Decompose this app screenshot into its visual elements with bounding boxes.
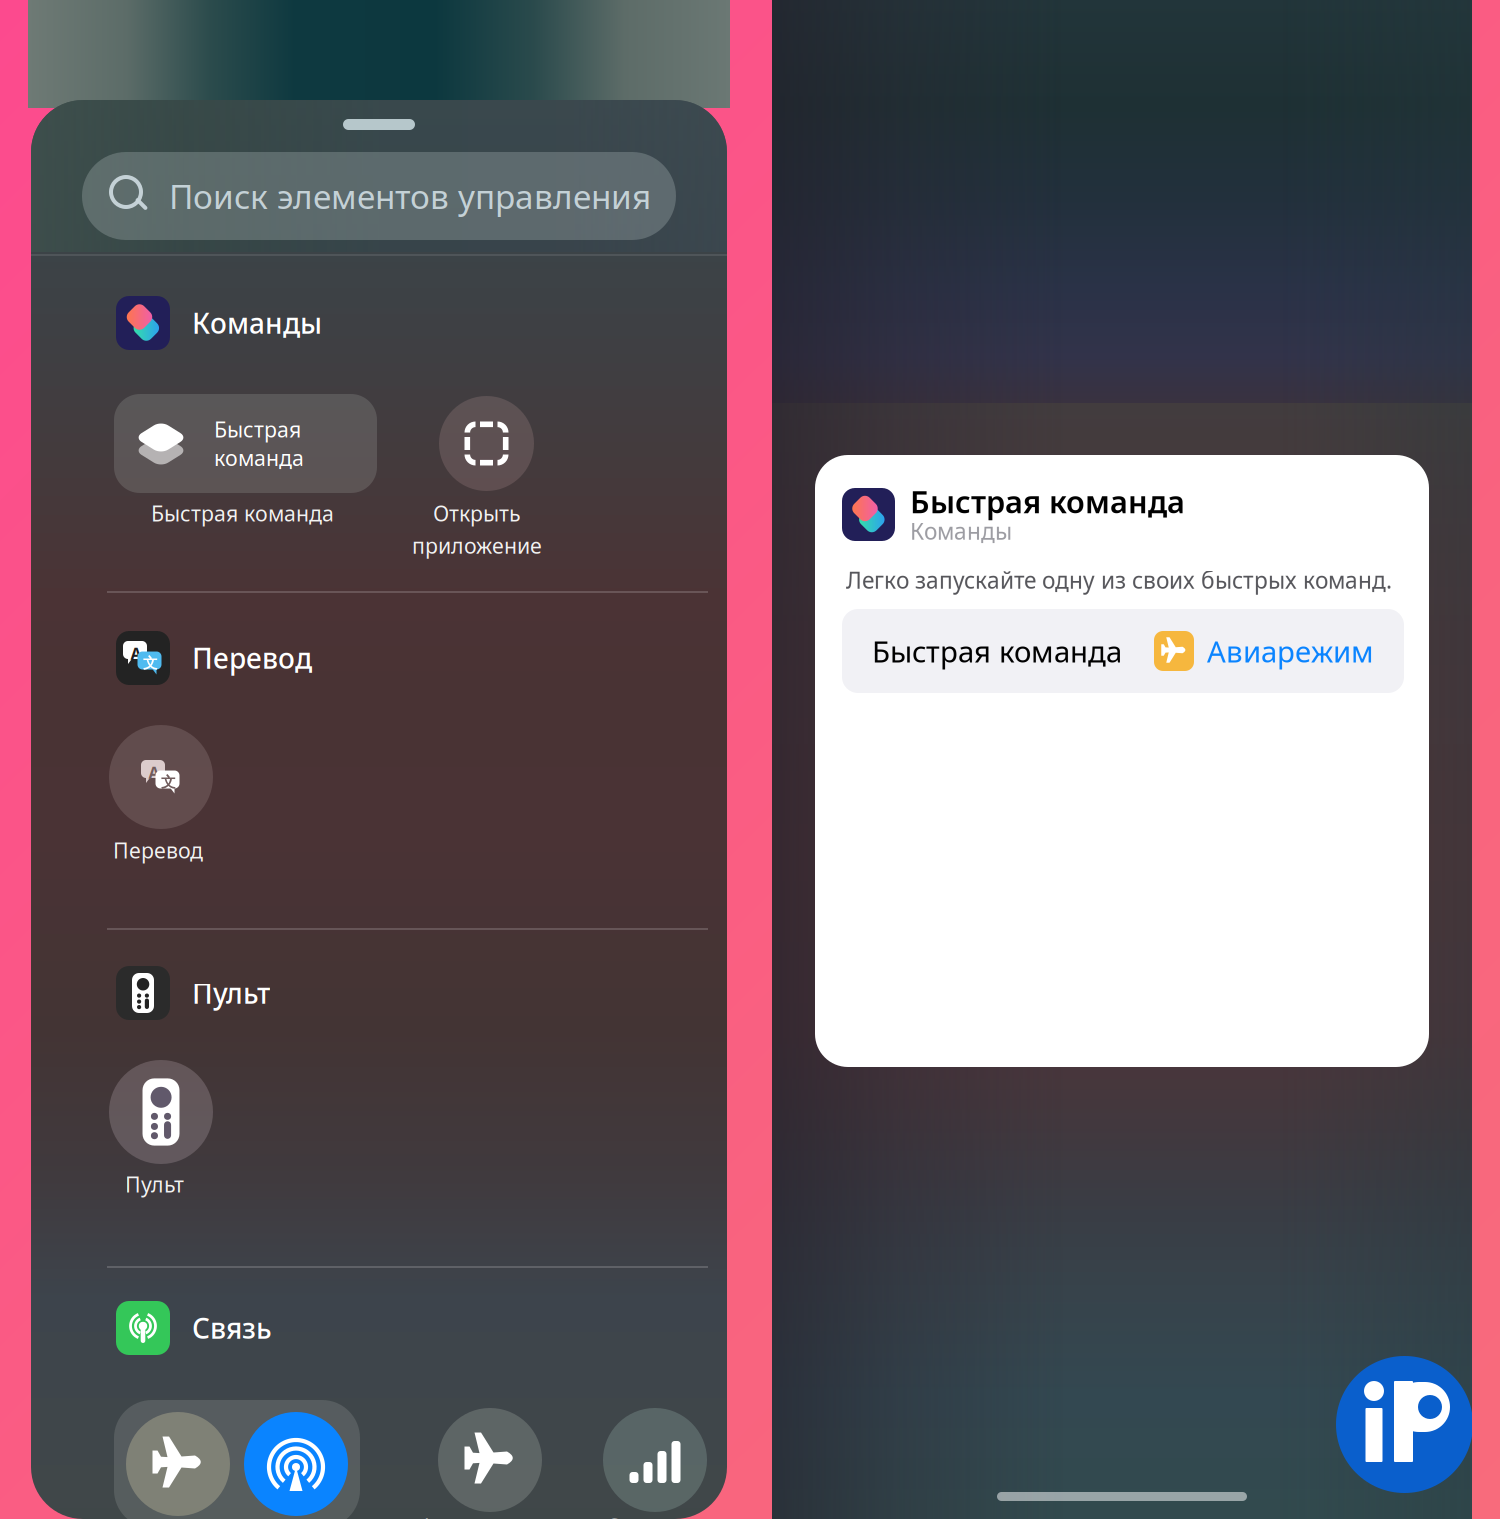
staticText: приложение [412,531,542,560]
button[interactable]: AirDrop [244,1412,348,1516]
staticText: Команды [910,516,1012,546]
button[interactable]: Авиарежим [126,1412,230,1516]
staticText: Пульт [125,1170,184,1198]
staticText: Быстрая команда [910,481,1185,522]
staticText: Пульт [192,974,270,1012]
staticText: Команды [192,304,322,342]
button[interactable]: Перевод [109,725,213,829]
staticText: Связь [192,1309,272,1347]
button[interactable]: Авиарежим [438,1408,542,1512]
button[interactable]: Быстрая команда [842,609,1404,693]
staticText: Перевод [113,836,203,864]
staticText: Быстрая команда [872,631,1122,670]
staticText: Легко запускайте одну из своих быстрых к… [846,565,1392,595]
staticText: Перевод [192,639,312,677]
staticText: 文 [161,773,176,791]
button[interactable]: Сотовые данные [603,1408,707,1512]
staticText: Быстрая команда [151,499,334,527]
staticText: A [148,762,159,783]
staticText: A [130,643,141,664]
staticText: Быстрая команда [214,415,304,472]
staticText: Авиарежим [420,1512,540,1519]
button[interactable]: iPhones.ru [1336,1356,1473,1493]
button[interactable]: Открыть приложение [439,396,534,491]
staticText: Поиск элементов управления [169,174,651,218]
staticText: Сотовые [606,1512,695,1519]
staticText: Авиарежим [1207,631,1374,670]
staticText: Открыть [433,499,521,527]
button[interactable]: Быстрая команда [114,394,377,493]
staticText: 文 [143,654,158,672]
button[interactable]: Поиск элементов управления [82,152,676,240]
button[interactable]: Пульт [109,1060,213,1164]
